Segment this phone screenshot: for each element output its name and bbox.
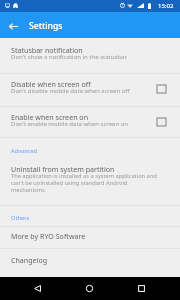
staticText: Don't enable mobile data when screen on (11, 120, 129, 128)
staticText: Don't show a notification in the statusb… (11, 53, 127, 61)
staticText: Statusbar notification (11, 45, 83, 55)
staticText: Others (11, 214, 30, 222)
staticText: Enable when screen on (11, 112, 89, 122)
button[interactable]: Statusbar notification (0, 39, 180, 73)
button[interactable]: Recent apps (130, 277, 153, 300)
staticText: Don't disable mobile data when screen of… (11, 87, 130, 95)
staticText: Disable when screen off (11, 79, 91, 89)
staticText: Uninstall from system partition (11, 164, 115, 174)
staticText: Settings (29, 20, 63, 32)
button[interactable]: Uninstall from system partition (0, 157, 180, 203)
button[interactable]: Navigate up (3, 16, 24, 37)
button[interactable]: Home (78, 277, 101, 300)
button[interactable]: Enable when screen on (0, 106, 180, 137)
button[interactable]: Disable when screen off (0, 73, 180, 107)
staticText: 15:02 (158, 2, 174, 10)
button[interactable]: Changelog (0, 248, 180, 272)
button[interactable]: Back (26, 277, 49, 300)
staticText: Changelog (11, 255, 48, 265)
staticText: The application is installed as a system… (11, 172, 159, 194)
staticText: Advanced (11, 147, 38, 155)
staticText: More by RYO Software (11, 231, 86, 241)
button[interactable]: More by RYO Software (0, 224, 180, 248)
